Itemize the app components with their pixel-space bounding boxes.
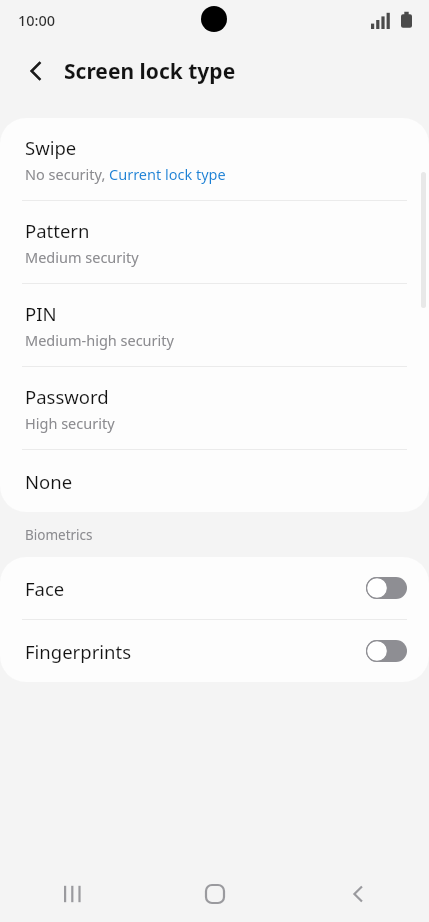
staticText: No security, Current lock type xyxy=(25,164,226,184)
staticText: Password xyxy=(25,384,109,409)
button[interactable]: Recents xyxy=(0,866,143,922)
button[interactable]: Face xyxy=(0,557,429,619)
staticText: Swipe xyxy=(25,135,77,160)
staticText: Biometrics xyxy=(25,526,93,544)
staticText: Screen lock type xyxy=(64,57,236,86)
button[interactable]: PIN xyxy=(0,284,429,366)
button[interactable]: Swipe xyxy=(0,118,429,200)
button[interactable]: Fingerprints xyxy=(0,620,429,682)
button[interactable]: Back xyxy=(286,866,429,922)
staticText: 10:00 xyxy=(18,10,56,30)
button[interactable]: Back xyxy=(16,51,56,91)
button[interactable]: Pattern xyxy=(0,201,429,283)
staticText: PIN xyxy=(25,301,57,326)
staticText: High security xyxy=(25,413,115,433)
staticText: Fingerprints xyxy=(25,639,366,664)
staticText: Medium security xyxy=(25,247,139,267)
button[interactable]: None xyxy=(0,450,429,512)
staticText: Face xyxy=(25,576,366,601)
button[interactable]: Password xyxy=(0,367,429,449)
staticText: Medium-high security xyxy=(25,330,174,350)
button[interactable]: Home xyxy=(143,866,286,922)
staticText: None xyxy=(25,469,73,494)
staticText: Pattern xyxy=(25,218,90,243)
